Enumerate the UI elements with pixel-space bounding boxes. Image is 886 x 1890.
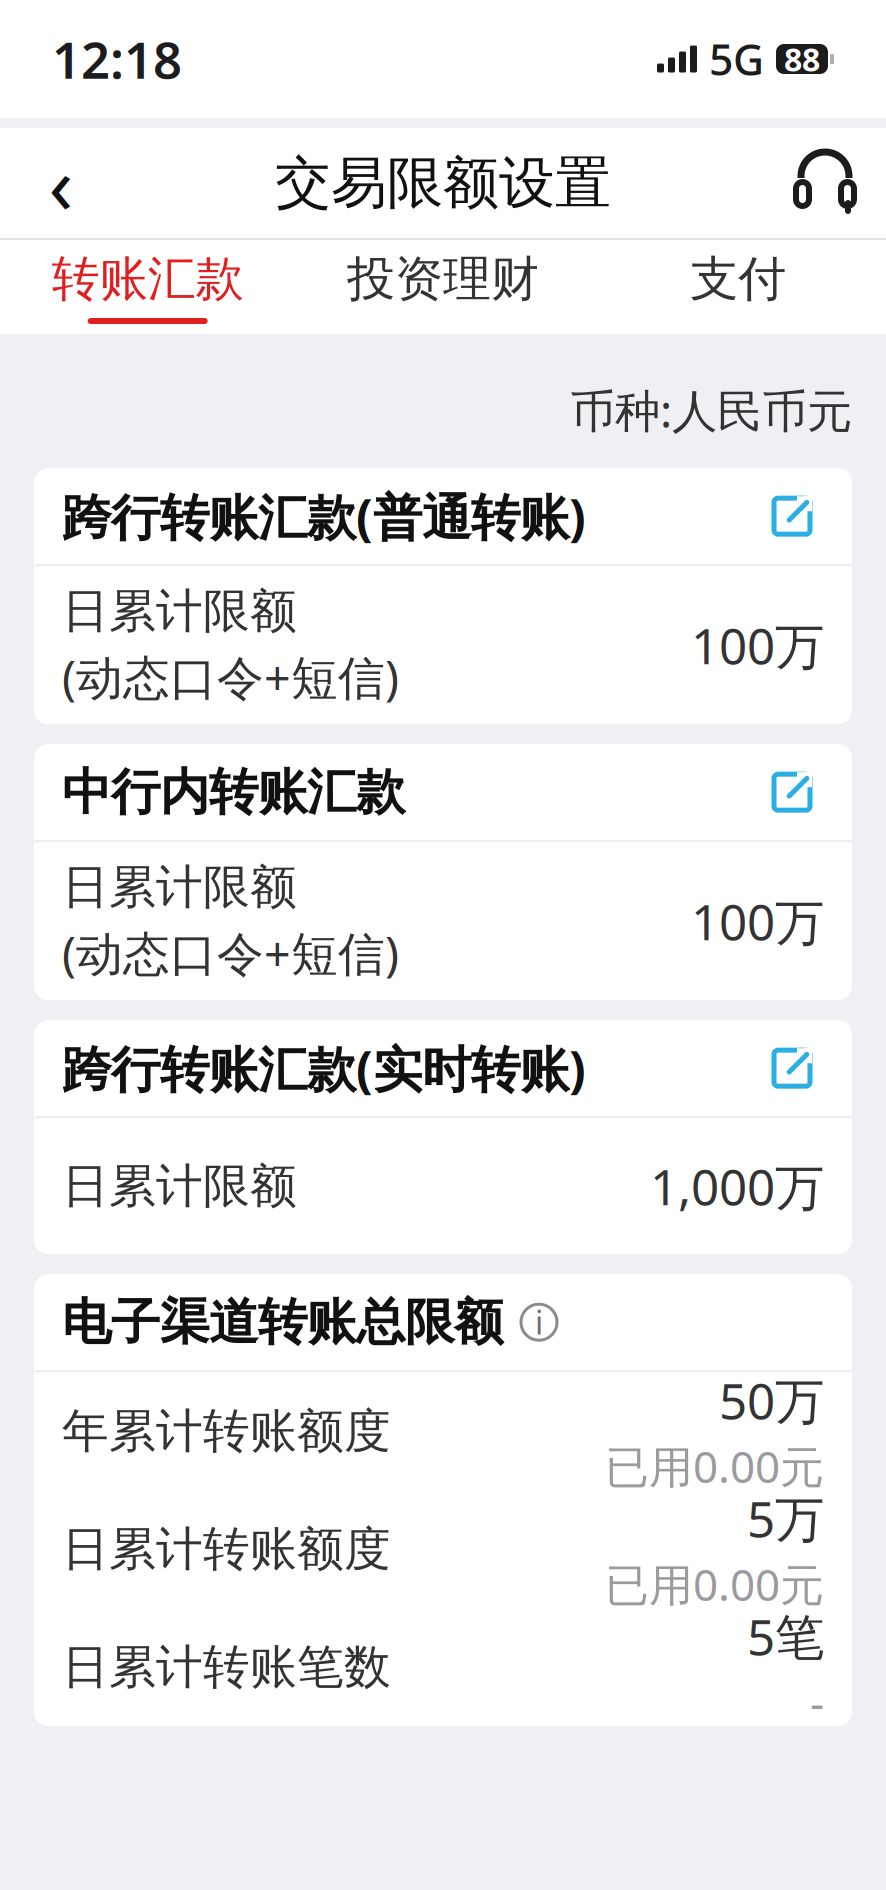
staticText: 5G — [709, 31, 764, 87]
staticText: 转账汇款 — [52, 249, 244, 308]
staticText: 投资理财 — [347, 249, 539, 308]
staticText: ‹ — [48, 130, 73, 236]
staticText: 电子渠道转账总限额 — [62, 1292, 503, 1352]
staticText: 支付 — [690, 249, 786, 308]
staticText: 已用0.00元 — [605, 1555, 824, 1613]
staticText: 交易限额设置 — [275, 149, 611, 217]
staticText: 日累计限额 — [62, 1157, 297, 1215]
staticText: 跨行转账汇款(实时转账) — [62, 1035, 586, 1101]
staticText: 50万 — [719, 1367, 824, 1433]
button[interactable]: 编辑跨行转账汇款(普通转账)限额 — [760, 484, 824, 548]
button[interactable]: 编辑跨行转账汇款(实时转账)限额 — [760, 1036, 824, 1100]
staticText: 5笔 — [747, 1603, 824, 1669]
button[interactable]: 支付 — [591, 240, 886, 334]
staticText: - — [810, 1673, 824, 1731]
staticText: 5万 — [747, 1485, 824, 1551]
staticText: 年累计转账额度 — [62, 1402, 391, 1460]
staticText: 币种:人民币元 — [570, 380, 852, 440]
staticText: (动态口令+短信) — [62, 646, 399, 708]
staticText: 88 — [784, 38, 820, 80]
staticText: (动态口令+短信) — [62, 922, 399, 984]
staticText: 日累计限额 — [62, 859, 297, 916]
staticText: 跨行转账汇款(普通转账) — [62, 483, 586, 549]
staticText: i — [535, 1301, 543, 1343]
button[interactable]: 投资理财 — [295, 240, 591, 334]
button[interactable]: 转账汇款 — [0, 240, 295, 334]
staticText: 日累计转账额度 — [62, 1520, 391, 1578]
staticText: 中行内转账汇款 — [62, 762, 405, 822]
button[interactable]: 返回 — [18, 135, 104, 231]
staticText: 日累计限额 — [62, 583, 297, 640]
button[interactable]: 客服 — [782, 135, 868, 231]
staticText: 1,000万 — [650, 1153, 824, 1219]
staticText: 100万 — [691, 888, 824, 954]
staticText: 12:18 — [52, 25, 182, 93]
staticText: 100万 — [691, 612, 824, 678]
staticText: 日累计转账笔数 — [62, 1638, 391, 1696]
button[interactable]: 编辑中行内转账汇款限额 — [760, 760, 824, 824]
staticText: 已用0.00元 — [605, 1437, 824, 1495]
